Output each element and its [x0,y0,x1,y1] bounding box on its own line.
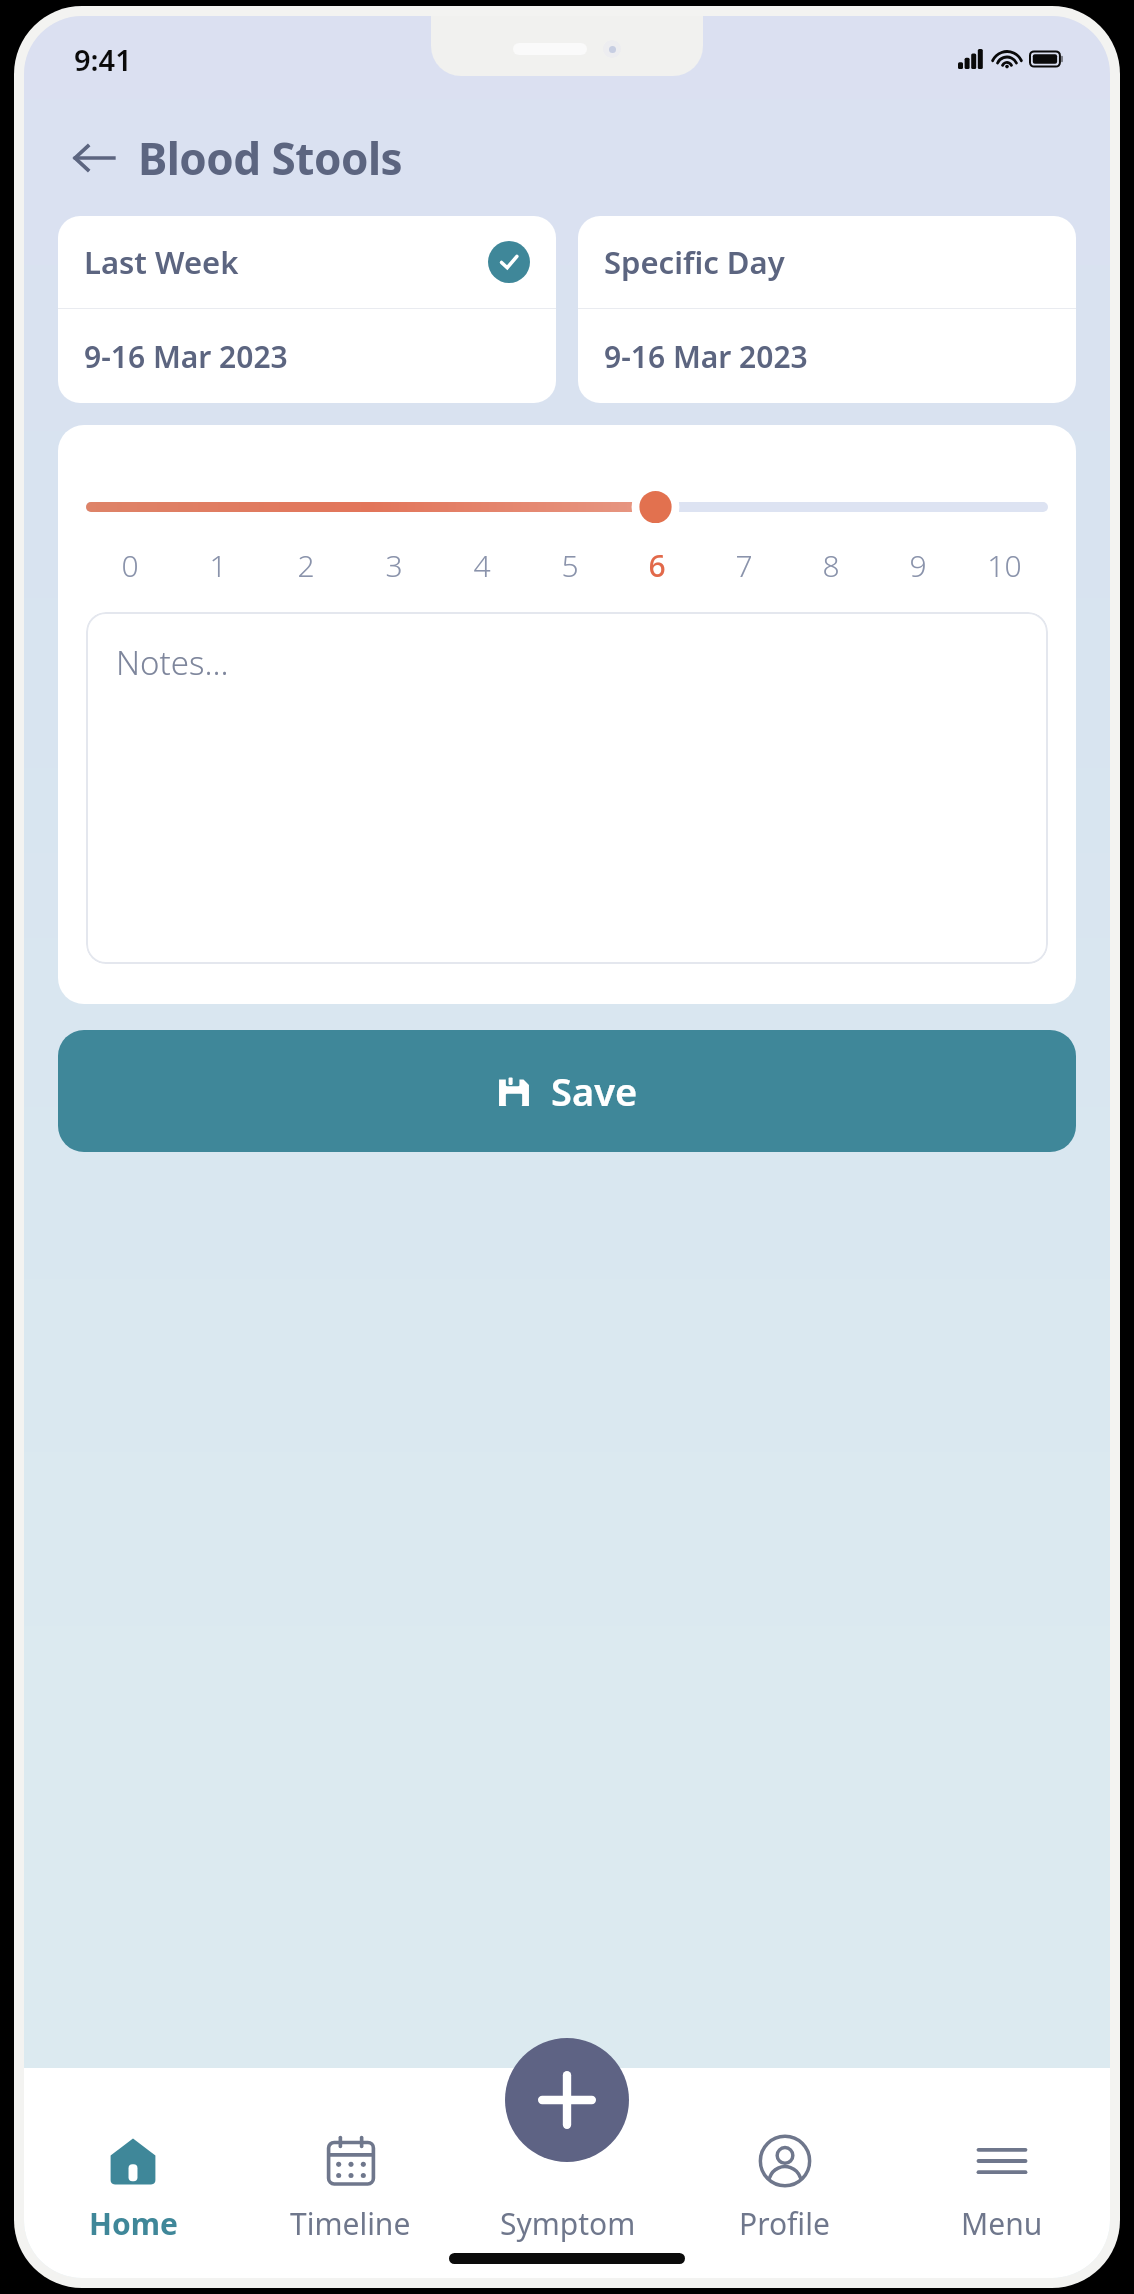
button[interactable]: Profile [676,2133,893,2244]
button[interactable]: Home [24,2133,242,2244]
staticText: 6 [648,545,666,586]
button[interactable]: Severity slider, value 6 [86,481,1048,533]
staticText: 9-16 Mar 2023 [84,336,288,377]
staticText: 8 [822,545,840,586]
staticText: 4 [473,545,491,586]
button[interactable]: Symptom [459,2133,676,2244]
staticText: Specific Day [604,241,1050,283]
staticText: 5 [561,545,579,586]
staticText: Profile [739,2203,830,2244]
staticText: Save [551,1065,638,1117]
staticText: 9:41 [74,40,132,79]
button[interactable]: Notes... [86,612,1048,964]
button[interactable]: Last Week [58,216,556,403]
staticText: Last Week [84,241,488,283]
staticText: 10 [987,545,1022,586]
staticText: 2 [297,545,315,586]
button[interactable]: Add symptom [505,2038,629,2162]
staticText: Menu [961,2203,1043,2244]
staticText: Blood Stools [138,128,403,188]
button[interactable]: Menu [893,2133,1110,2244]
staticText: 3 [385,545,403,586]
staticText: 0 [121,545,139,586]
button[interactable]: Save [58,1030,1076,1152]
button[interactable]: Specific Day [578,216,1076,403]
button[interactable]: Back [64,128,124,188]
staticText: Notes... [116,640,229,685]
button[interactable]: Timeline [242,2133,459,2244]
staticText: Timeline [290,2203,411,2244]
staticText: 9-16 Mar 2023 [604,336,808,377]
staticText: 1 [209,545,227,586]
staticText: Home [89,2203,178,2244]
staticText: 9 [909,545,927,586]
staticText: 7 [735,545,753,586]
staticText: Symptom [500,2203,636,2244]
